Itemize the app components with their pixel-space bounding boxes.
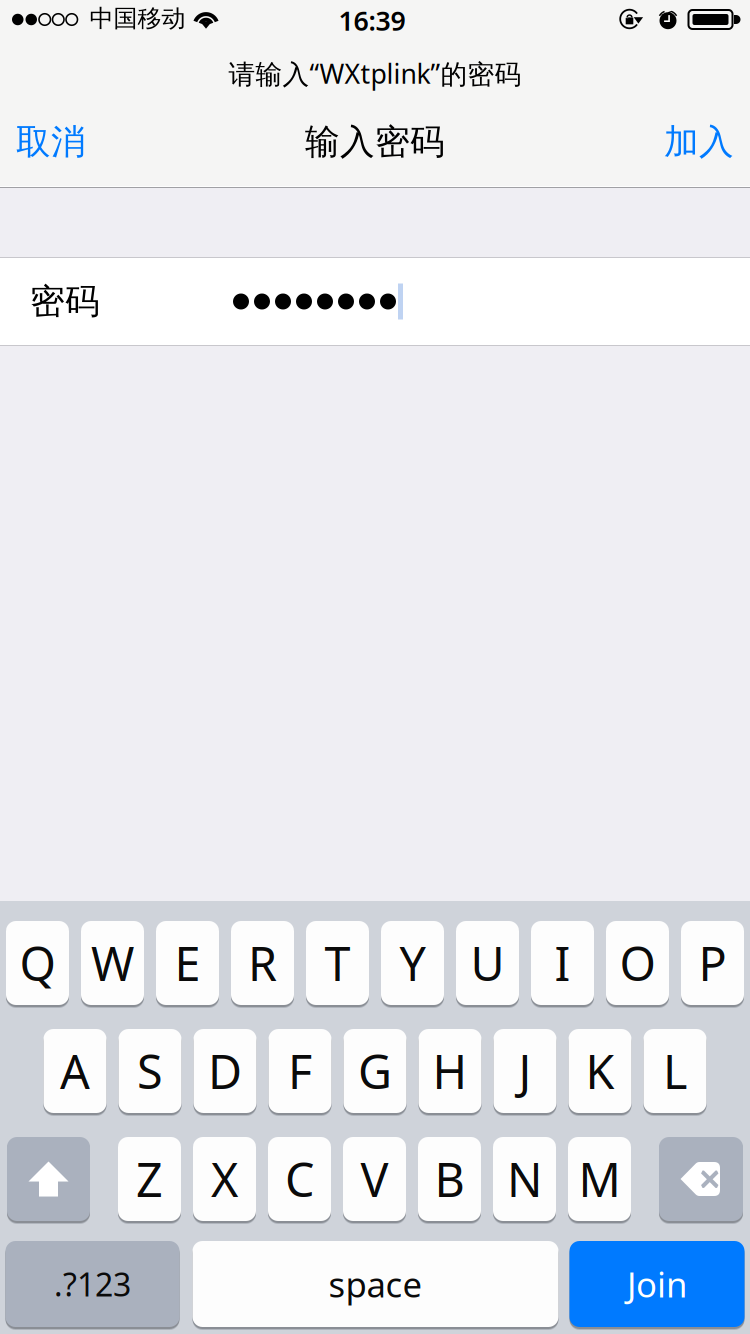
staticText: Z — [136, 1148, 163, 1210]
staticText: N — [507, 1148, 542, 1210]
button[interactable]: Q — [6, 919, 69, 1006]
button[interactable]: L — [643, 1027, 706, 1114]
staticText: 16:39 — [338, 3, 405, 38]
staticText: V — [360, 1148, 388, 1210]
staticText: Q — [19, 932, 55, 994]
button[interactable]: M — [568, 1135, 631, 1222]
button[interactable]: J — [493, 1027, 556, 1114]
staticText: R — [248, 932, 277, 994]
button[interactable]: R — [231, 919, 294, 1006]
staticText: E — [174, 932, 200, 994]
staticText: G — [358, 1040, 392, 1102]
button[interactable]: C — [268, 1135, 331, 1222]
button[interactable]: Y — [381, 919, 444, 1006]
button[interactable]: Z — [118, 1135, 181, 1222]
button[interactable]: .?123 — [5, 1239, 179, 1328]
staticText: Join — [627, 1261, 687, 1307]
staticText: M — [578, 1148, 620, 1210]
button[interactable]: T — [306, 919, 369, 1006]
staticText: 取消 — [16, 121, 86, 163]
button[interactable]: A — [43, 1027, 106, 1114]
button[interactable]: 加入 — [656, 107, 742, 169]
staticText: S — [137, 1040, 163, 1102]
button[interactable]: E — [156, 919, 219, 1006]
staticText: P — [698, 932, 726, 994]
button[interactable]: I — [531, 919, 594, 1006]
button[interactable]: space — [192, 1239, 558, 1328]
button[interactable]: D — [193, 1027, 256, 1114]
button[interactable]: Join — [569, 1239, 744, 1328]
button[interactable]: G — [343, 1027, 406, 1114]
staticText: H — [432, 1040, 467, 1102]
staticText: 中国移动 — [89, 4, 185, 33]
staticText: F — [288, 1040, 312, 1102]
staticText: D — [208, 1040, 242, 1102]
button[interactable]: K — [568, 1027, 631, 1114]
button[interactable]: Shift — [7, 1135, 90, 1222]
staticText: X — [211, 1148, 238, 1210]
button[interactable]: N — [493, 1135, 556, 1222]
button[interactable]: 密码 — [0, 258, 750, 345]
button[interactable]: F — [268, 1027, 331, 1114]
staticText: I — [554, 932, 570, 994]
button[interactable]: B — [418, 1135, 481, 1222]
button[interactable]: Delete — [659, 1135, 743, 1222]
staticText: B — [434, 1148, 464, 1210]
staticText: T — [324, 932, 350, 994]
staticText: 输入密码 — [305, 121, 445, 163]
staticText: W — [91, 932, 134, 994]
staticText: U — [470, 932, 504, 994]
staticText: C — [285, 1148, 314, 1210]
staticText: J — [518, 1040, 531, 1102]
staticText: L — [663, 1040, 687, 1102]
button[interactable]: U — [456, 919, 519, 1006]
button[interactable]: S — [118, 1027, 181, 1114]
staticText: O — [619, 932, 655, 994]
button[interactable]: H — [418, 1027, 481, 1114]
button[interactable]: 取消 — [8, 107, 94, 169]
button[interactable]: P — [681, 919, 744, 1006]
button[interactable]: V — [343, 1135, 406, 1222]
staticText: 密码 — [30, 280, 100, 323]
staticText: K — [585, 1040, 614, 1102]
staticText: 加入 — [664, 121, 734, 163]
staticText: .?123 — [54, 1263, 131, 1305]
staticText: 请输入“WXtplink”的密码 — [228, 56, 521, 91]
staticText: Y — [399, 932, 425, 994]
staticText: A — [60, 1040, 90, 1102]
staticText: space — [328, 1261, 422, 1307]
button[interactable]: O — [606, 919, 669, 1006]
button[interactable]: X — [193, 1135, 256, 1222]
button[interactable]: W — [81, 919, 144, 1006]
